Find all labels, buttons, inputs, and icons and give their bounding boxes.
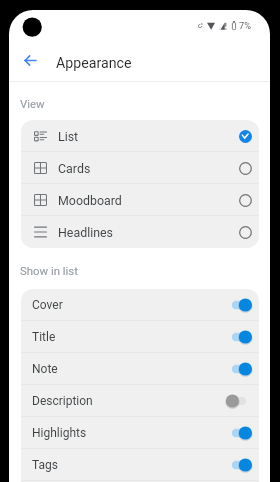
button[interactable]: Highlights (21, 417, 259, 449)
button[interactable]: Description (21, 385, 259, 417)
button[interactable]: Title (21, 321, 259, 353)
button[interactable]: Cards (21, 152, 259, 184)
staticText: Tags (32, 458, 226, 472)
button[interactable]: Back (12, 42, 48, 78)
staticText: Cover (32, 298, 226, 312)
staticText: 7% (239, 20, 251, 31)
button[interactable]: Headlines (21, 216, 259, 248)
button[interactable]: Note (21, 353, 259, 385)
staticText: Cards (58, 161, 239, 176)
staticText: Highlights (32, 426, 226, 440)
button[interactable]: Moodboard (21, 184, 259, 216)
staticText: Appearance (56, 55, 132, 72)
button[interactable]: List (21, 120, 259, 152)
staticText: Description (32, 394, 226, 408)
button[interactable]: Cover (21, 289, 259, 321)
staticText: Show in list (20, 264, 78, 277)
staticText: List (58, 129, 239, 144)
staticText: Title (32, 330, 226, 344)
staticText: Headlines (58, 225, 239, 240)
staticText: View (20, 97, 45, 110)
button[interactable]: Tags (21, 449, 259, 481)
staticText: Note (32, 362, 226, 376)
staticText: Moodboard (58, 193, 239, 208)
